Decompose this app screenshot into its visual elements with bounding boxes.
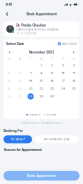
- button[interactable]: For Myself: [3, 135, 32, 143]
- button[interactable]: Back: [4, 10, 11, 18]
- button[interactable]: 7: [25, 69, 36, 77]
- staticText: 9:41: [5, 2, 11, 7]
- staticText: 12 Yr Experience: [16, 32, 36, 35]
- button[interactable]: 15: [36, 77, 47, 85]
- button[interactable]: 10: [58, 69, 69, 77]
- staticText: 7: [30, 71, 31, 75]
- button[interactable]: 27: [14, 92, 25, 100]
- staticText: 16: [51, 79, 54, 82]
- staticText: 4: [73, 64, 75, 67]
- staticText: T: [30, 57, 32, 60]
- staticText: For Myself: [11, 138, 25, 141]
- staticText: Select Date: [6, 42, 24, 46]
- staticText: 10: [62, 71, 65, 75]
- staticText: T: [51, 57, 53, 60]
- button[interactable]: 8: [36, 69, 47, 77]
- staticText: 11: [73, 71, 75, 75]
- staticText: 9: [51, 71, 53, 75]
- staticText: 14: [29, 79, 32, 82]
- staticText: 19: [7, 87, 10, 90]
- button[interactable]: 19: [3, 85, 14, 92]
- staticText: For Someone Else: [44, 138, 70, 141]
- staticText: 18: [73, 79, 76, 82]
- staticText: M: [19, 57, 21, 60]
- button[interactable]: Nov 2023: [58, 41, 77, 46]
- staticText: Available: [29, 113, 40, 116]
- staticText: W: [40, 57, 43, 60]
- button[interactable]: 17: [58, 77, 69, 85]
- staticText: Dr. Pradip Chauhan: [16, 23, 46, 27]
- button[interactable]: For Someone Else: [35, 135, 79, 143]
- button[interactable]: 14: [25, 77, 36, 85]
- button[interactable]: 11: [69, 69, 79, 77]
- staticText: 27: [18, 95, 21, 98]
- staticText: Booking For: [3, 129, 22, 133]
- staticText: Booked: [47, 113, 57, 116]
- button[interactable]: 1: [36, 61, 47, 69]
- staticText: 28: [29, 95, 33, 98]
- button[interactable]: 4: [69, 61, 79, 69]
- staticText: F: [63, 57, 64, 60]
- staticText: Book Appointment: [27, 174, 56, 178]
- button[interactable]: 21: [25, 85, 36, 92]
- button[interactable]: Book Appointment: [3, 171, 79, 180]
- button[interactable]: 16: [47, 77, 58, 85]
- button[interactable]: 24: [58, 85, 69, 92]
- button[interactable]: 30: [47, 92, 58, 100]
- button[interactable]: 28: [25, 92, 36, 100]
- button[interactable]: 22: [36, 85, 47, 92]
- button[interactable]: 23: [47, 85, 58, 92]
- staticText: 21: [29, 87, 32, 90]
- button[interactable]: 29: [36, 92, 47, 100]
- staticText: 25: [72, 87, 76, 90]
- staticText: 26: [7, 95, 11, 98]
- button[interactable]: 3: [58, 61, 69, 69]
- staticText: 13: [18, 79, 21, 82]
- staticText: Nov 2023: [62, 42, 77, 45]
- staticText: 12: [7, 79, 10, 82]
- staticText: 17: [62, 79, 64, 82]
- staticText: S: [73, 57, 75, 60]
- staticText: Reason for Appointment: [3, 148, 41, 152]
- staticText: 2: [51, 64, 53, 67]
- button[interactable]: 2: [47, 61, 58, 69]
- staticText: 30: [50, 95, 54, 98]
- button[interactable]: Next month: [70, 49, 76, 55]
- button[interactable]: 5: [3, 69, 14, 77]
- staticText: November 2023: [29, 50, 54, 54]
- staticText: 23: [50, 87, 54, 90]
- button[interactable]: Previous month: [6, 49, 12, 55]
- staticText: 8: [40, 71, 42, 75]
- staticText: Select a date to see available slots: [21, 121, 62, 124]
- button[interactable]: 6: [14, 69, 25, 77]
- staticText: 20: [18, 87, 22, 90]
- staticText: 5: [8, 71, 10, 75]
- button[interactable]: 18: [69, 77, 79, 85]
- staticText: 29: [39, 95, 43, 98]
- staticText: S: [8, 57, 10, 60]
- staticText: 1: [41, 64, 42, 67]
- staticText: Book Appointment: [26, 12, 56, 16]
- button[interactable]: 9: [47, 69, 58, 77]
- staticText: Cardiologist at Shree Hospital: [16, 28, 58, 31]
- staticText: 3: [62, 64, 64, 67]
- button[interactable]: Dr. Pradip Chauhan: [3, 21, 79, 37]
- button[interactable]: 20: [14, 85, 25, 92]
- staticText: 6: [19, 71, 21, 75]
- button[interactable]: 12: [3, 77, 14, 85]
- staticText: 24: [61, 87, 65, 90]
- button[interactable]: 13: [14, 77, 25, 85]
- button[interactable]: 25: [69, 85, 79, 92]
- staticText: 22: [39, 87, 43, 90]
- staticText: 15: [40, 79, 43, 82]
- button[interactable]: 26: [3, 92, 14, 100]
